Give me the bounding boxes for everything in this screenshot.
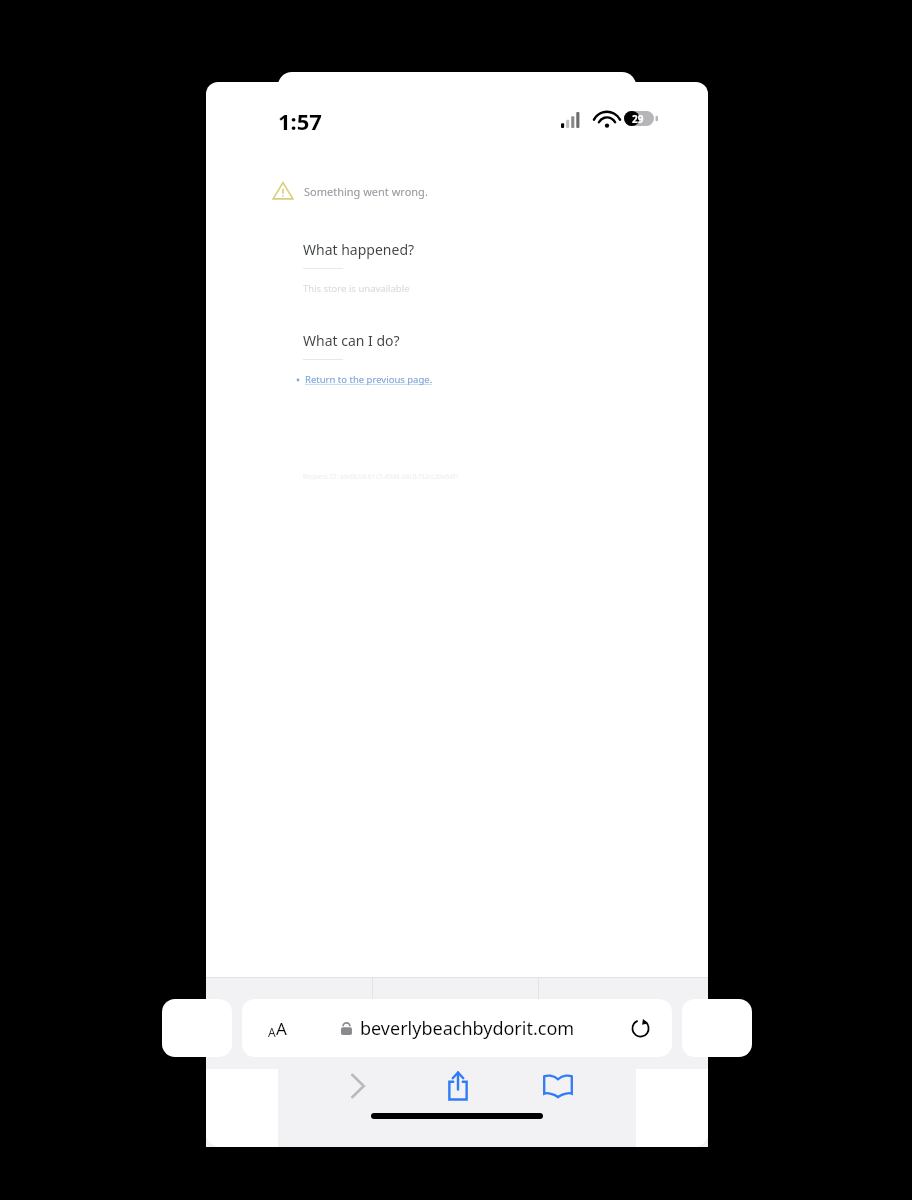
staticText: What happened? xyxy=(303,240,415,259)
button[interactable]: Bookmarks xyxy=(508,1063,608,1109)
staticText: This store is unavailable xyxy=(303,282,410,295)
staticText: Something went wrong. xyxy=(304,184,428,199)
staticText: Return to the previous page. xyxy=(305,373,433,386)
staticText: 29 xyxy=(632,112,644,126)
staticText: Request ID: a9c0b1d-b1c5-49d4-b8c0-f32cc… xyxy=(303,472,459,481)
button[interactable]: Forward xyxy=(307,1063,408,1109)
button[interactable]: Text size options xyxy=(254,1005,300,1051)
staticText: beverlybeachbydorit.com xyxy=(360,1016,575,1041)
staticText: A xyxy=(276,1017,287,1040)
staticText: 1:57 xyxy=(278,106,322,136)
button[interactable]: Share xyxy=(408,1063,508,1109)
button[interactable]: Reload page xyxy=(618,1006,662,1050)
button[interactable]: Text size options xyxy=(242,999,672,1057)
staticText: What can I do? xyxy=(303,331,400,350)
button[interactable]: Return to the previous page. xyxy=(294,373,433,386)
button[interactable]: Tabs xyxy=(608,1063,708,1109)
button[interactable]: Back xyxy=(206,1063,307,1109)
staticText: A xyxy=(268,1024,276,1040)
